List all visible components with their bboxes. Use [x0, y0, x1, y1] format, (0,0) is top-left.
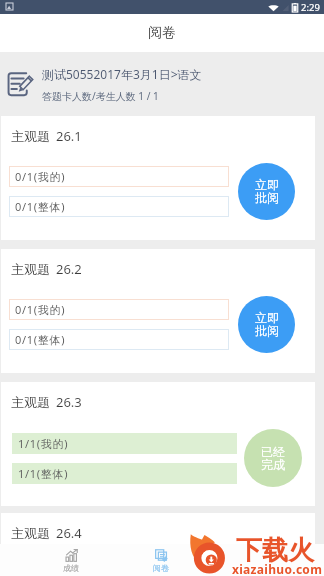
staticText: 0/1(我的)	[15, 302, 66, 317]
button[interactable]: 主观题	[1, 249, 315, 373]
button[interactable]: 已经 完成	[244, 429, 302, 487]
staticText: 1/1(我的)	[18, 436, 69, 451]
staticText: 0/1(整体)	[15, 332, 66, 347]
staticText: 26.1	[56, 127, 82, 145]
staticText: 阅卷	[153, 563, 169, 573]
button[interactable]: 主观题	[1, 513, 315, 576]
staticText: 已经 完成	[261, 444, 285, 473]
staticText: 1/1(整体)	[18, 466, 69, 481]
staticText: 0/1(整体)	[15, 199, 66, 214]
staticText: 立即 批阅	[255, 560, 279, 576]
staticText: 答题卡人数/考生人数 1 / 1	[42, 89, 159, 103]
staticText: 26.2	[56, 260, 82, 278]
staticText: 主观题	[11, 261, 50, 277]
button[interactable]: 阅卷	[131, 544, 191, 576]
staticText: 26.4	[56, 524, 82, 542]
button[interactable]: 主观题	[1, 382, 315, 506]
staticText: 0/1(我的)	[15, 561, 66, 576]
staticText: 阅卷	[148, 24, 176, 42]
button[interactable]: 主观题	[1, 116, 315, 240]
button[interactable]: 成绩	[41, 544, 101, 576]
staticText: 立即 批阅	[255, 310, 279, 339]
button[interactable]: 立即 批阅	[238, 560, 295, 576]
staticText: 主观题	[11, 525, 50, 541]
button[interactable]: 立即 批阅	[238, 296, 295, 353]
staticText: 主观题	[11, 128, 50, 144]
staticText: xiazaihuo.com	[232, 561, 323, 576]
staticText: 0/1(我的)	[15, 169, 66, 184]
button[interactable]: 立即 批阅	[238, 163, 295, 220]
staticText: 下载火	[236, 534, 314, 567]
staticText: 2:29	[301, 1, 320, 14]
staticText: 成绩	[63, 563, 79, 573]
staticText: 测试50552017年3月1日>语文	[42, 66, 202, 82]
staticText: 26.3	[56, 393, 82, 411]
staticText: 立即 批阅	[255, 177, 279, 206]
staticText: 主观题	[11, 394, 50, 410]
